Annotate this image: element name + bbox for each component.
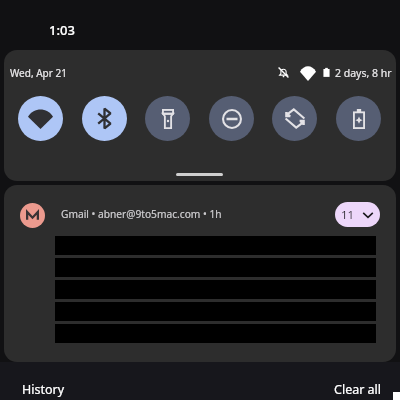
button[interactable]: Auto-rotate: [272, 96, 317, 141]
staticText: Wed, Apr 21: [10, 66, 67, 80]
button[interactable]: Wi-Fi: [18, 96, 63, 141]
button[interactable]: Flashlight: [145, 96, 190, 141]
staticText: Gmail • abner@9to5mac.com • 1h: [61, 207, 222, 221]
button[interactable]: Bluetooth: [82, 96, 127, 141]
button[interactable]: Clear all: [325, 374, 391, 400]
staticText: History: [22, 381, 65, 398]
button[interactable]: Do not disturb: [209, 96, 254, 141]
staticText: 2 days, 8 hr: [335, 66, 392, 80]
button[interactable]: Expand 11 notifications: [335, 202, 380, 227]
button[interactable]: History: [13, 374, 74, 400]
staticText: 11: [341, 207, 355, 223]
staticText: 1:03: [49, 21, 75, 39]
button[interactable]: Battery saver: [336, 96, 381, 141]
staticText: Clear all: [334, 381, 382, 398]
